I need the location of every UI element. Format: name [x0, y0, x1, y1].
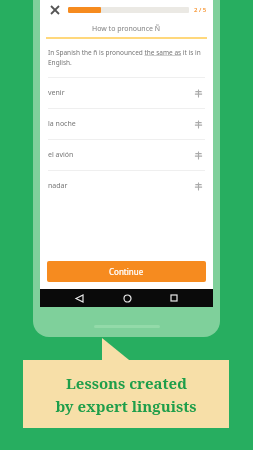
- staticText: nadar: [48, 181, 68, 191]
- staticText: el avión: [48, 150, 74, 160]
- button[interactable]: la noche: [40, 109, 213, 139]
- other: Play nadar: [191, 179, 205, 193]
- button[interactable]: Close: [46, 1, 64, 19]
- staticText: Lessons created: [66, 373, 187, 393]
- button[interactable]: Home: [118, 289, 136, 307]
- staticText: How to pronounce Ñ: [92, 24, 161, 34]
- staticText: Continue: [109, 266, 144, 277]
- button[interactable]: venir: [40, 78, 213, 108]
- button[interactable]: Continue: [47, 261, 206, 282]
- button[interactable]: Recents: [165, 289, 183, 307]
- button[interactable]: nadar: [40, 171, 213, 201]
- staticText: 2 / 5: [194, 6, 207, 14]
- other: Play venir: [191, 86, 205, 100]
- staticText: by expert linguists: [55, 396, 197, 416]
- staticText: venir: [48, 88, 65, 98]
- button[interactable]: el avión: [40, 140, 213, 170]
- button[interactable]: Back: [70, 289, 88, 307]
- other: Play la noche: [191, 117, 205, 131]
- staticText: In Spanish the ñ is pronounced the same …: [48, 48, 205, 67]
- other: Play el avión: [191, 148, 205, 162]
- staticText: la noche: [48, 119, 76, 129]
